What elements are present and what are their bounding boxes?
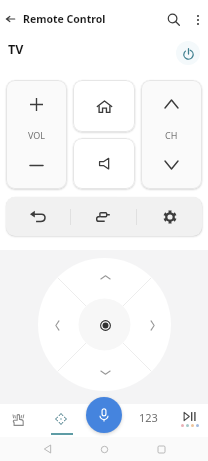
button[interactable]: Back	[0, 9, 20, 29]
button[interactable]: Volume down	[6, 141, 67, 189]
staticText: CH	[165, 129, 178, 141]
button[interactable]: Search	[161, 7, 186, 32]
button[interactable]: Number pad	[134, 404, 162, 437]
button[interactable]: Input source	[71, 197, 136, 236]
button[interactable]: D-pad	[47, 404, 75, 437]
button[interactable]: Mute	[73, 138, 135, 189]
button[interactable]: Power	[176, 41, 200, 65]
button[interactable]: Channel down	[141, 141, 202, 189]
button[interactable]: Home	[90, 437, 118, 461]
button[interactable]: Down	[95, 362, 115, 382]
button[interactable]: Right	[142, 315, 162, 335]
staticText: VOL	[28, 129, 46, 141]
button[interactable]: Up	[95, 267, 115, 287]
button[interactable]: Voice search	[86, 397, 122, 433]
button[interactable]: Settings	[137, 197, 202, 236]
button[interactable]: More options	[187, 9, 208, 30]
button[interactable]: Media controls	[176, 404, 204, 437]
staticText: Remote Control	[23, 12, 106, 26]
button[interactable]: Touchpad	[4, 404, 32, 437]
button[interactable]: Home	[73, 80, 135, 132]
button[interactable]: Volume up	[6, 80, 67, 128]
button[interactable]: Recent apps	[147, 437, 175, 461]
button[interactable]: OK	[79, 299, 131, 351]
button[interactable]: Channel up	[141, 80, 202, 128]
staticText: 123	[139, 410, 158, 425]
button[interactable]: Back	[6, 197, 70, 236]
staticText: TV	[8, 41, 24, 58]
button[interactable]: Back	[33, 437, 61, 461]
button[interactable]: Left	[47, 315, 67, 335]
